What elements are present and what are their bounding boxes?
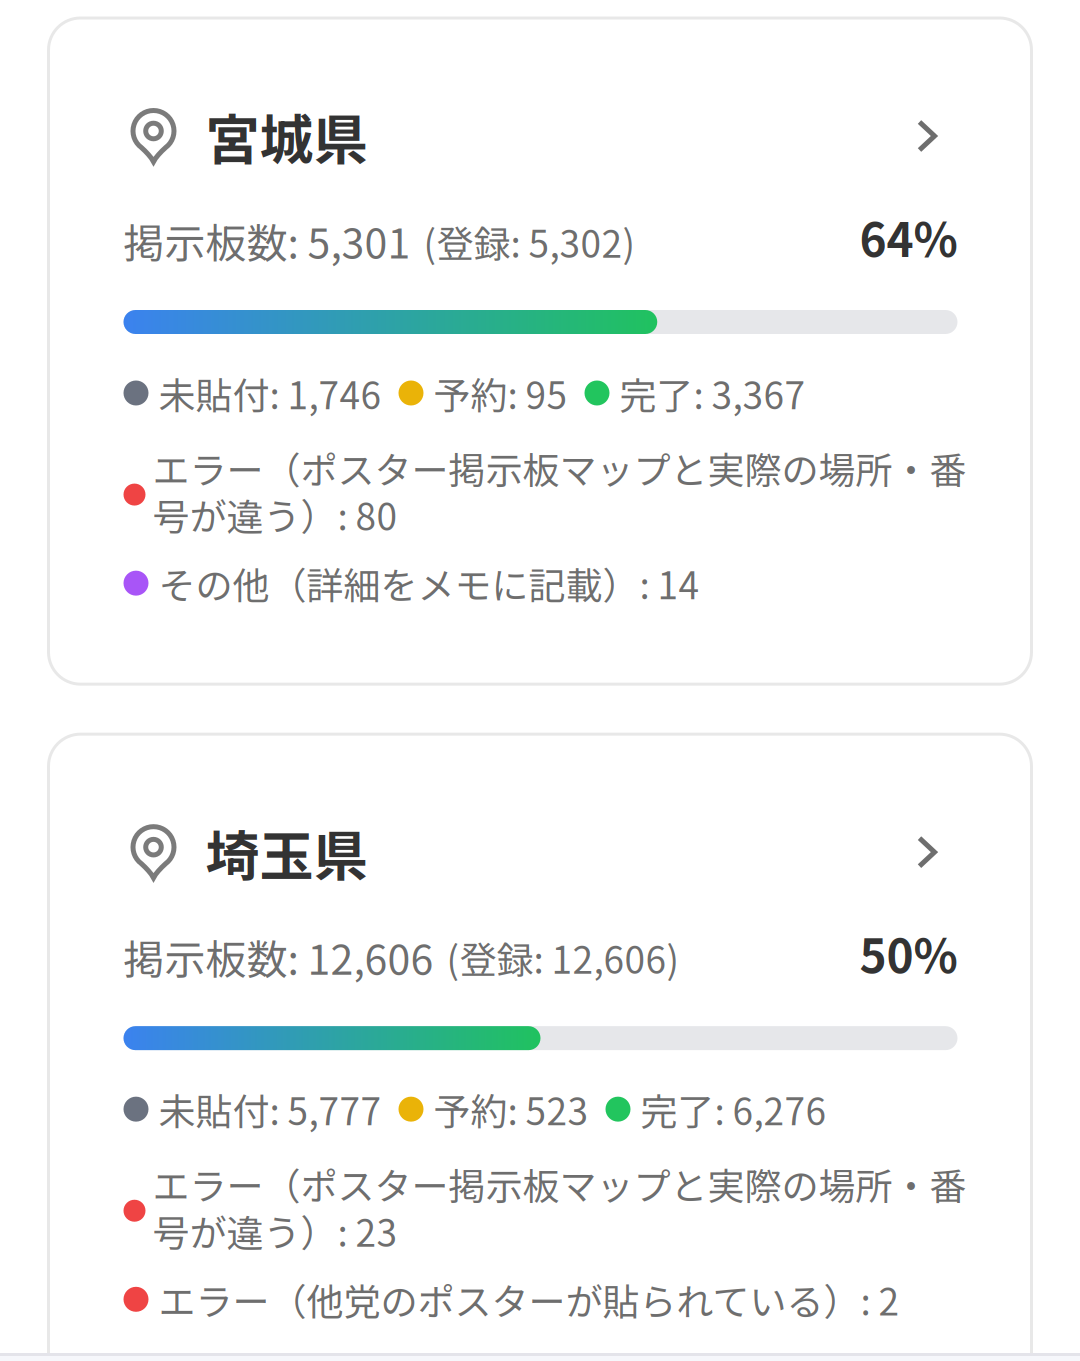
staticText: 掲示板数: 12,606 bbox=[123, 927, 433, 986]
staticText: 埼玉県 bbox=[205, 813, 367, 891]
staticText: 号が違う）: 80 bbox=[152, 488, 397, 541]
staticText: (登録: 5,302) bbox=[423, 215, 635, 268]
staticText: エラー（ポスター掲示板マップと実際の場所・番 bbox=[152, 1157, 966, 1211]
staticText: 掲示板数: 5,301 bbox=[123, 211, 410, 270]
staticText: エラー（ポスター掲示板マップと実際の場所・番 bbox=[152, 441, 966, 495]
staticText: 未貼付: 5,777 bbox=[158, 1082, 381, 1136]
staticText: 50% bbox=[859, 920, 957, 986]
staticText: 予約: 95 bbox=[433, 366, 567, 420]
button[interactable]: 宮城県 bbox=[123, 108, 957, 164]
staticText: 号が違う）: 23 bbox=[152, 1204, 397, 1257]
staticText: エラー（他党のポスターが貼られている）: 2 bbox=[158, 1272, 899, 1326]
staticText: (登録: 12,606) bbox=[446, 931, 679, 984]
staticText: 予約: 523 bbox=[433, 1082, 588, 1136]
staticText: 完了: 3,367 bbox=[619, 366, 805, 420]
staticText: 未貼付: 1,746 bbox=[158, 366, 381, 420]
staticText: 宮城県 bbox=[205, 97, 367, 175]
button[interactable]: 埼玉県 bbox=[123, 824, 957, 880]
staticText: その他（詳細をメモに記載）: 14 bbox=[158, 556, 699, 610]
staticText: 完了: 6,276 bbox=[640, 1082, 826, 1136]
staticText: 64% bbox=[859, 204, 957, 270]
